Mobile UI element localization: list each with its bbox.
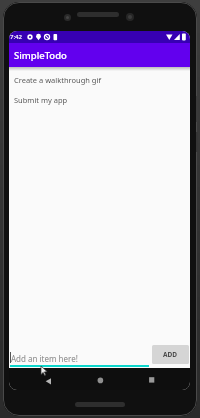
staticText: ADD <box>163 350 178 359</box>
button[interactable]: ADD <box>152 345 189 364</box>
staticText: SimpleTodo <box>14 49 67 62</box>
button[interactable] <box>10 365 149 367</box>
button[interactable]: Create a walkthrough gif <box>9 71 190 89</box>
staticText: Create a walkthrough gif <box>14 75 101 85</box>
staticText: Add an item here! <box>11 353 78 364</box>
button[interactable]: Submit my app <box>9 89 190 111</box>
staticText: 7:42 <box>10 33 22 41</box>
staticText: Submit my app <box>14 95 68 105</box>
